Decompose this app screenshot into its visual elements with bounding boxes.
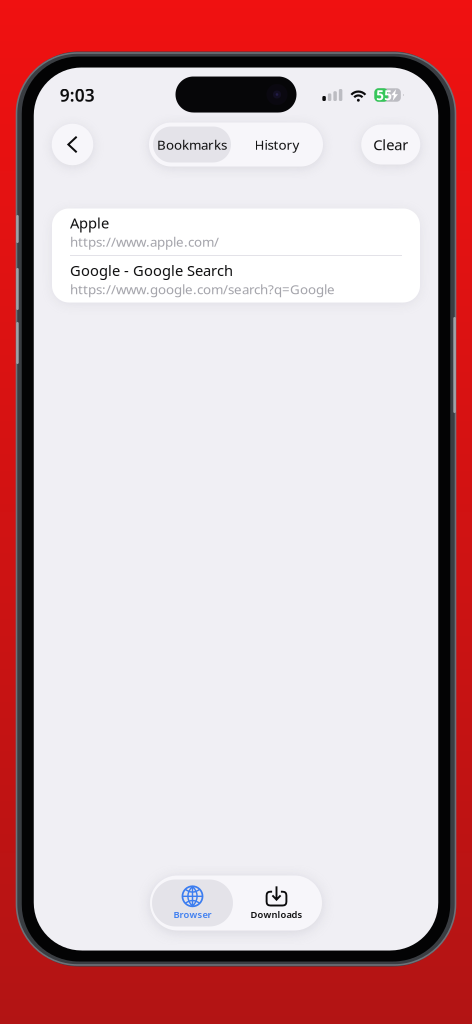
staticText: 55: [376, 86, 392, 104]
button[interactable]: Clear: [361, 124, 420, 164]
button[interactable]: Back: [52, 124, 93, 165]
staticText: Browser: [173, 908, 211, 921]
staticText: https://www.google.com/search?q=Google: [70, 280, 335, 298]
staticText: Clear: [373, 135, 408, 154]
staticText: 9:03: [60, 83, 95, 106]
staticText: https://www.apple.com/: [70, 233, 219, 250]
button[interactable]: Apple: [52, 208, 420, 255]
button[interactable]: History: [231, 126, 323, 162]
button[interactable]: Google - Google Search: [52, 256, 420, 302]
button[interactable]: Bookmarks: [153, 126, 231, 162]
button[interactable]: Browser: [152, 879, 233, 926]
staticText: Apple: [70, 213, 109, 233]
staticText: Google - Google Search: [70, 261, 233, 280]
staticText: History: [254, 136, 299, 153]
staticText: Bookmarks: [157, 136, 227, 153]
button[interactable]: Downloads: [233, 879, 320, 926]
staticText: Downloads: [250, 908, 302, 921]
